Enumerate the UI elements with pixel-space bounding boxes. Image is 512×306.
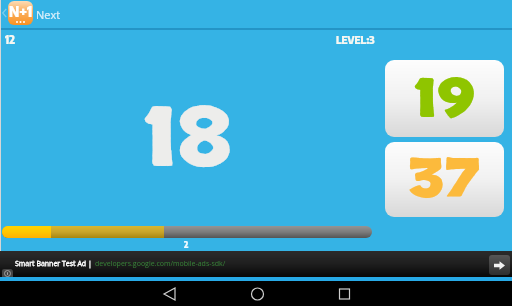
staticText: developers.google.com/mobile-ads-sdk/	[95, 259, 226, 269]
button[interactable]: Back	[147, 281, 191, 306]
button[interactable]: Recent apps	[322, 281, 366, 306]
button[interactable]: Home	[235, 281, 279, 306]
staticText: 19	[414, 64, 476, 137]
staticText: Next	[36, 7, 61, 22]
button[interactable]: 37	[385, 142, 504, 217]
staticText: 37	[409, 144, 480, 217]
staticText: 2	[184, 239, 189, 250]
staticText: Smart Banner Test Ad |	[15, 259, 92, 269]
button[interactable]: 19	[385, 60, 504, 137]
other: Navigate up	[2, 8, 7, 18]
staticText: LEVEL:3	[336, 33, 375, 47]
button[interactable]: N plus 1 app icon	[8, 1, 33, 25]
button[interactable]: Ad choices info	[2, 269, 13, 277]
staticText: N+1	[9, 2, 33, 21]
button[interactable]: Open advertisement	[489, 255, 510, 275]
staticText: 12	[5, 32, 15, 47]
staticText: 18	[144, 85, 233, 179]
